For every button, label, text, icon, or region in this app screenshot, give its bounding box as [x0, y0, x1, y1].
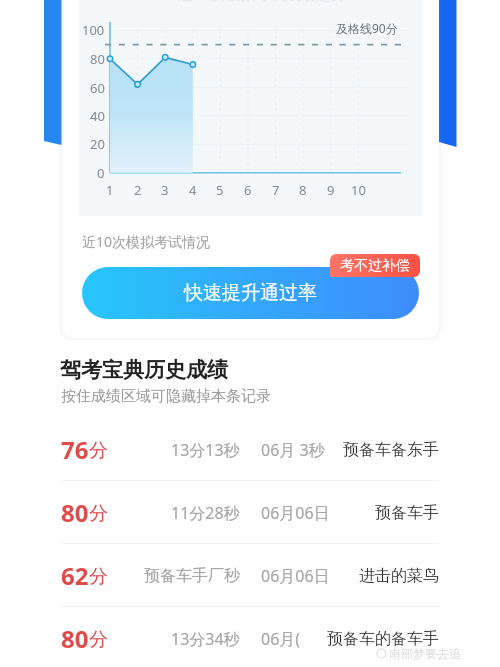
- staticText: 11分28秒: [171, 502, 240, 524]
- staticText: 分: [89, 628, 108, 652]
- staticText: 0: [97, 164, 105, 182]
- staticText: 10: [351, 181, 366, 199]
- staticText: 80: [61, 496, 89, 529]
- staticText: 80: [61, 622, 89, 655]
- staticText: 预备车手: [375, 503, 439, 523]
- staticText: 7: [272, 181, 280, 199]
- staticText: 06月 3秒: [261, 439, 325, 461]
- staticText: 76: [61, 433, 89, 466]
- staticText: 驾考宝典历史成绩: [60, 357, 228, 383]
- button[interactable]: 76: [0, 418, 500, 481]
- staticText: 4: [189, 181, 197, 199]
- staticText: 62: [61, 559, 89, 592]
- staticText: 20: [90, 135, 105, 153]
- staticText: 100: [82, 21, 105, 39]
- staticText: 及格线90分: [336, 20, 398, 36]
- staticText: 分: [89, 565, 108, 589]
- staticText: 预备车的备车手: [327, 629, 439, 649]
- staticText: 13分13秒: [171, 439, 240, 461]
- staticText: 06月06日: [261, 565, 330, 587]
- staticText: 80: [90, 50, 105, 68]
- button[interactable]: 80: [0, 607, 500, 667]
- button[interactable]: 80: [0, 481, 500, 544]
- staticText: 13分34秒: [171, 628, 240, 650]
- staticText: 06月06日: [261, 502, 330, 524]
- staticText: 南部梦要去追: [389, 646, 461, 661]
- button[interactable]: 考不过补偿: [330, 254, 420, 277]
- staticText: 40: [90, 107, 105, 125]
- staticText: 5: [216, 181, 224, 199]
- staticText: 06月(: [261, 628, 301, 650]
- staticText: 1: [106, 181, 114, 199]
- staticText: 分: [89, 439, 108, 463]
- staticText: 近10次模拟考试情况: [82, 232, 211, 251]
- staticText: 3: [161, 181, 169, 199]
- button[interactable]: 快速提升通过率: [82, 267, 419, 319]
- staticText: 按住成绩区域可隐藏掉本条记录: [61, 387, 271, 406]
- staticText: 近10次模拟考试成绩走势: [178, 0, 346, 4]
- staticText: 2: [134, 181, 142, 199]
- staticText: 60: [90, 79, 105, 97]
- staticText: 进击的菜鸟: [359, 566, 439, 586]
- staticText: 6: [244, 181, 252, 199]
- staticText: 8: [299, 181, 307, 199]
- staticText: 分: [89, 502, 108, 526]
- staticText: 快速提升通过率: [184, 281, 317, 305]
- button[interactable]: 62: [0, 544, 500, 607]
- staticText: 9: [327, 181, 335, 199]
- staticText: 考不过补偿: [340, 257, 410, 275]
- staticText: 预备车手厂秒: [144, 566, 240, 586]
- staticText: 预备车备东手: [343, 440, 439, 460]
